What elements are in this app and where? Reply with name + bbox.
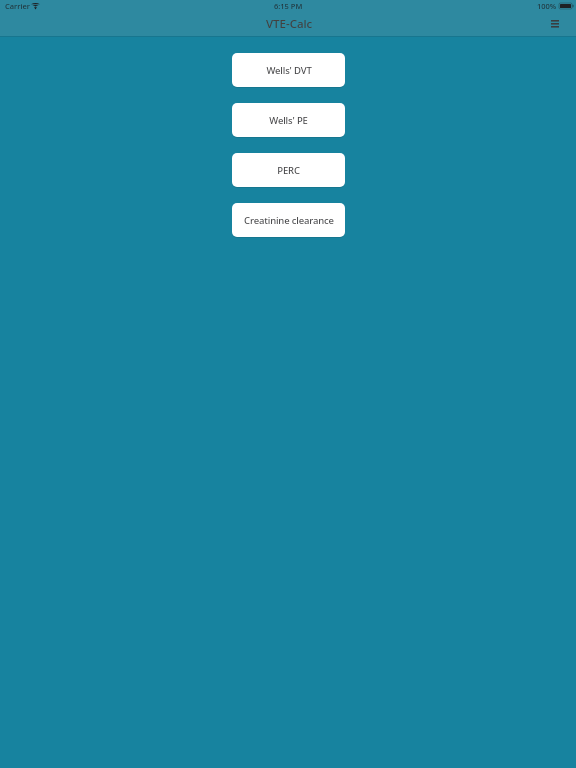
button[interactable]: Wells' PE — [232, 103, 345, 137]
staticText: PERC — [277, 164, 300, 177]
button[interactable]: PERC — [232, 153, 345, 187]
staticText: Wells' DVT — [266, 64, 312, 77]
staticText: Carrier — [5, 1, 30, 11]
staticText: 6:15 PM — [274, 1, 303, 11]
button[interactable]: Wells' DVT — [232, 53, 345, 87]
staticText: Creatinine clearance — [244, 214, 334, 227]
button[interactable]: Creatinine clearance — [232, 203, 345, 237]
staticText: VTE-Calc — [266, 16, 313, 32]
staticText: 100% — [537, 1, 557, 11]
staticText: Wells' PE — [269, 114, 308, 127]
button[interactable]: Menu — [546, 15, 564, 33]
